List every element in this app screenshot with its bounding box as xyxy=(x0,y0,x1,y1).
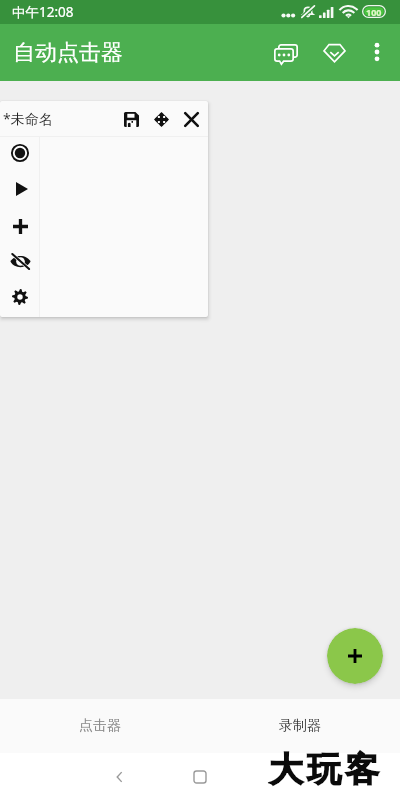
staticText: 录制器 xyxy=(279,717,321,735)
button[interactable]: Record xyxy=(3,136,37,170)
button[interactable]: Settings xyxy=(3,280,37,314)
button[interactable]: Close xyxy=(176,104,206,134)
staticText: 点击器 xyxy=(79,717,121,735)
staticText: 100 xyxy=(366,6,382,18)
button[interactable]: Play xyxy=(3,172,37,206)
button[interactable]: Back xyxy=(100,757,140,797)
staticText: 自动点击器 xyxy=(13,39,123,67)
staticText: *未命名 xyxy=(3,109,53,128)
button[interactable]: Add xyxy=(327,628,383,684)
button[interactable]: 点击器 xyxy=(0,699,200,753)
staticText: 大玩客 xyxy=(267,748,381,791)
button[interactable]: 录制器 xyxy=(200,699,400,753)
button[interactable]: Move xyxy=(146,104,176,134)
button[interactable]: Home xyxy=(180,757,220,797)
button[interactable]: Save xyxy=(116,104,146,134)
button[interactable]: Messages xyxy=(262,30,310,78)
button[interactable]: Hide xyxy=(3,244,37,278)
button[interactable]: Add xyxy=(3,209,37,243)
button[interactable]: Premium xyxy=(310,29,358,77)
button[interactable]: More options xyxy=(356,31,398,73)
staticText: 中午12:08 xyxy=(12,3,74,21)
